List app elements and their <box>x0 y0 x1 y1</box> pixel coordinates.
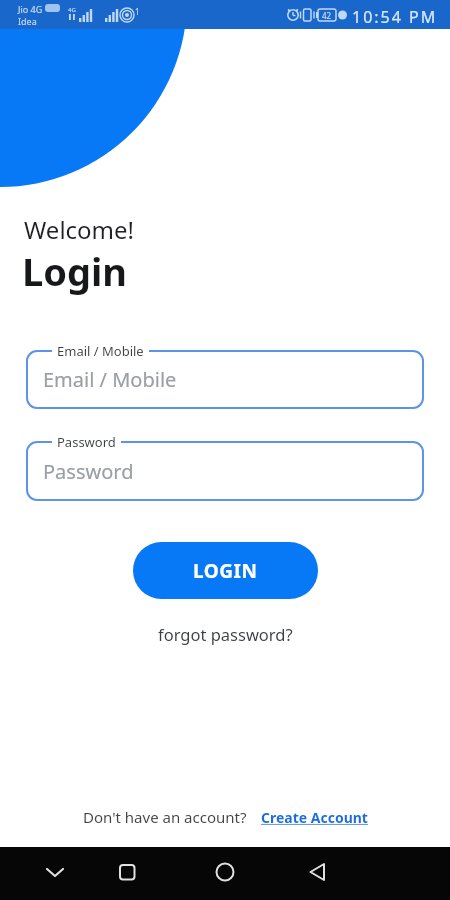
staticText: Password <box>57 433 116 451</box>
button[interactable] <box>224 847 337 900</box>
staticText: 42 <box>322 10 332 21</box>
button[interactable] <box>112 847 224 900</box>
staticText: LOGIN <box>193 558 258 584</box>
button[interactable]: forgot password? <box>158 623 293 645</box>
staticText: Login <box>22 245 128 297</box>
staticText: Create Account <box>261 808 368 827</box>
button[interactable]: Email / Mobile <box>43 350 424 409</box>
staticText: Email / Mobile <box>57 342 144 360</box>
staticText: 4G <box>68 6 76 14</box>
staticText: forgot password? <box>158 623 293 645</box>
staticText: 1 <box>135 6 140 17</box>
staticText: Welcome! <box>24 213 135 246</box>
staticText: Email / Mobile <box>43 366 177 393</box>
button[interactable]: Password <box>43 441 424 501</box>
button[interactable]: Create Account <box>261 808 368 827</box>
staticText: Don't have an account? <box>83 807 247 827</box>
staticText: Password <box>43 458 134 485</box>
staticText: 10:54 PM <box>352 6 438 28</box>
staticText: Jio 4G <box>18 3 43 15</box>
button[interactable] <box>0 847 112 900</box>
button[interactable]: LOGIN <box>133 542 318 599</box>
staticText: Idea <box>18 15 37 27</box>
